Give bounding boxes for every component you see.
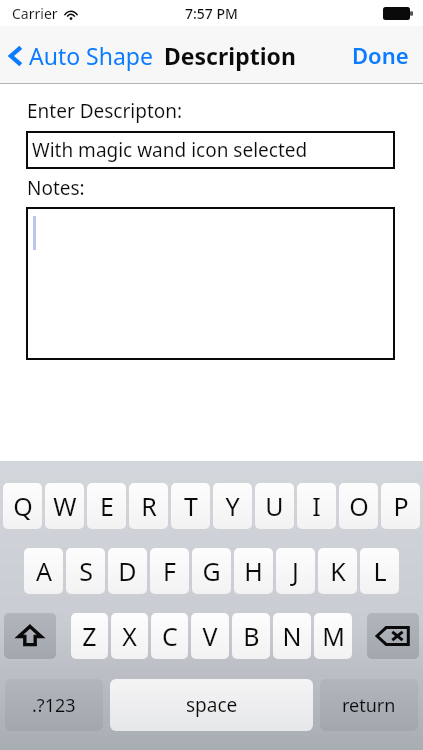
button[interactable]: Y <box>213 483 252 529</box>
staticText: Description <box>164 40 296 71</box>
button[interactable]: G <box>192 548 231 594</box>
button[interactable]: U <box>255 483 294 529</box>
staticText: L <box>373 554 387 588</box>
button[interactable]: F <box>150 548 189 594</box>
staticText: Y <box>225 489 240 523</box>
staticText: Z <box>82 619 97 653</box>
button[interactable]: Z <box>71 613 108 659</box>
button[interactable]: With magic wand icon selected <box>28 133 393 167</box>
button[interactable]: E <box>87 483 126 529</box>
button[interactable]: C <box>151 613 188 659</box>
staticText: O <box>349 489 369 523</box>
staticText: With magic wand icon selected <box>32 137 308 163</box>
staticText: U <box>265 489 284 523</box>
button[interactable]: M <box>314 613 352 659</box>
staticText: Auto Shape <box>29 40 153 71</box>
staticText: S <box>79 554 93 588</box>
button[interactable]: return <box>320 679 418 731</box>
staticText: return <box>342 693 396 718</box>
staticText: W <box>53 489 77 523</box>
staticText: 7:57 PM <box>185 4 238 23</box>
button[interactable]: H <box>234 548 273 594</box>
staticText: N <box>282 619 302 653</box>
staticText: X <box>122 619 137 653</box>
button[interactable]: J <box>276 548 315 594</box>
button[interactable]: A <box>24 548 63 594</box>
button[interactable]: V <box>191 613 229 659</box>
button[interactable]: N <box>273 613 311 659</box>
staticText: Done <box>352 40 409 70</box>
staticText: P <box>393 489 409 523</box>
button[interactable]: Delete <box>367 613 419 659</box>
button[interactable]: T <box>171 483 210 529</box>
button[interactable]: K <box>318 548 357 594</box>
staticText: .?123 <box>32 693 76 718</box>
button[interactable]: O <box>339 483 378 529</box>
staticText: M <box>322 619 345 653</box>
button[interactable]: Done <box>338 32 423 78</box>
staticText: R <box>141 489 157 523</box>
staticText: D <box>118 554 137 588</box>
staticText: Q <box>13 489 33 523</box>
staticText: B <box>243 619 260 653</box>
button[interactable]: Shift <box>4 613 56 659</box>
button[interactable]: R <box>129 483 168 529</box>
button[interactable]: X <box>111 613 148 659</box>
button[interactable]: I <box>297 483 336 529</box>
button[interactable]: Q <box>3 483 42 529</box>
button[interactable]: B <box>232 613 270 659</box>
button[interactable]: space <box>110 679 313 731</box>
staticText: C <box>162 619 178 653</box>
button[interactable]: P <box>381 483 420 529</box>
staticText: G <box>202 554 221 588</box>
staticText: A <box>36 554 52 588</box>
staticText: T <box>184 489 198 523</box>
button[interactable]: Auto Shape <box>8 40 159 71</box>
staticText: I <box>312 489 321 523</box>
button[interactable]: L <box>360 548 399 594</box>
staticText: V <box>202 619 218 653</box>
staticText: F <box>163 554 176 588</box>
button[interactable]: W <box>45 483 84 529</box>
staticText: Carrier <box>12 4 58 23</box>
staticText: Enter Descripton: <box>27 98 183 124</box>
staticText: J <box>292 554 299 588</box>
button[interactable]: .?123 <box>5 679 103 731</box>
staticText: E <box>100 489 114 523</box>
button[interactable]: S <box>66 548 105 594</box>
button[interactable]: D <box>108 548 147 594</box>
staticText: Notes: <box>27 175 85 201</box>
staticText: H <box>244 554 263 588</box>
staticText: space <box>186 692 238 718</box>
staticText: K <box>330 554 346 588</box>
